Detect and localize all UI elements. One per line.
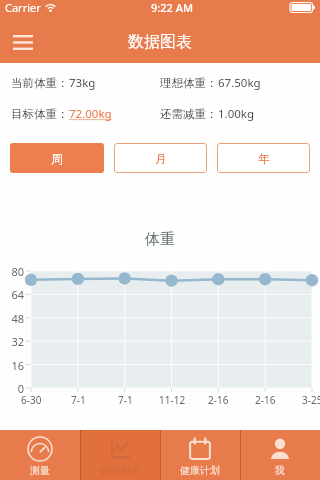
- staticText: 月: [155, 151, 167, 166]
- staticText: 2-16: [255, 393, 276, 407]
- button[interactable]: 数据图表: [80, 430, 160, 480]
- staticText: 目标体重：: [11, 107, 69, 121]
- staticText: 48: [11, 311, 24, 326]
- staticText: 72.00kg: [69, 106, 112, 122]
- staticText: 年: [258, 151, 270, 166]
- button[interactable]: 周: [10, 143, 104, 173]
- button[interactable]: 测量: [0, 430, 80, 480]
- staticText: 数据图表: [100, 464, 140, 477]
- staticText: 健康计划: [180, 464, 220, 477]
- button[interactable]: 我: [240, 430, 320, 480]
- staticText: 0: [17, 381, 24, 396]
- staticText: 当前体重：: [11, 76, 69, 90]
- staticText: 我: [275, 464, 285, 477]
- staticText: 32: [11, 334, 24, 349]
- staticText: 2-16: [208, 393, 229, 407]
- staticText: 理想体重：: [160, 76, 218, 90]
- staticText: 64: [11, 287, 24, 302]
- staticText: 16: [11, 358, 24, 373]
- staticText: 67.50kg: [218, 75, 261, 91]
- staticText: 9:22 AM: [151, 0, 194, 15]
- button[interactable]: 月: [114, 143, 207, 173]
- staticText: 测量: [30, 464, 50, 477]
- staticText: 周: [51, 151, 63, 166]
- staticText: 体重: [145, 230, 175, 249]
- staticText: 还需减重：: [160, 107, 218, 121]
- button[interactable]: Menu: [5, 24, 41, 60]
- staticText: 7-1: [71, 393, 86, 407]
- button[interactable]: 年: [217, 143, 310, 173]
- staticText: 80: [11, 264, 24, 279]
- staticText: 11-12: [159, 393, 186, 407]
- staticText: 3-25: [302, 393, 320, 407]
- staticText: 1.00kg: [218, 106, 255, 122]
- staticText: 73kg: [69, 75, 96, 91]
- button[interactable]: 健康计划: [160, 430, 240, 480]
- staticText: 数据图表: [128, 32, 192, 52]
- staticText: Carrier: [5, 0, 41, 15]
- staticText: 6-30: [21, 393, 42, 407]
- staticText: 7-1: [118, 393, 133, 407]
